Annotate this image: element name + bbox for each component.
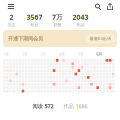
staticText: 作品 bbox=[63, 103, 73, 109]
button[interactable]: 作品 bbox=[63, 103, 87, 110]
button[interactable]: 2 bbox=[0, 13, 23, 27]
staticText: 获赞 bbox=[53, 22, 61, 27]
staticText: 2月 bbox=[22, 51, 28, 57]
staticText: 3月 bbox=[40, 51, 46, 57]
staticText: 572 bbox=[44, 103, 53, 110]
staticText: 1月 bbox=[3, 51, 9, 57]
button[interactable]: 阅读 bbox=[32, 103, 53, 110]
staticText: 5月 bbox=[78, 51, 84, 57]
button[interactable]: 7万 bbox=[46, 13, 69, 27]
staticText: 1686 bbox=[75, 103, 87, 110]
staticText: 7万 bbox=[52, 13, 63, 21]
staticText: 开通下期阅会员 bbox=[8, 35, 43, 42]
staticText: 2043 bbox=[72, 13, 88, 21]
staticText: 3567 bbox=[26, 13, 42, 21]
staticText: 阅读 bbox=[32, 103, 42, 109]
staticText: 2 bbox=[9, 13, 13, 21]
button[interactable]: 开通下期阅会员 bbox=[3, 30, 117, 47]
button[interactable]: Share bbox=[104, 0, 116, 12]
button[interactable]: Search bbox=[92, 0, 104, 12]
staticText: 关注 bbox=[7, 22, 15, 27]
staticText: 粉丝 bbox=[30, 22, 38, 27]
staticText: 6月 bbox=[96, 51, 102, 57]
staticText: 最低0.3元/天 bbox=[89, 36, 111, 41]
button[interactable]: Menu bbox=[4, 0, 18, 12]
staticText: 4月 bbox=[59, 51, 65, 57]
button[interactable]: 3567 bbox=[23, 13, 46, 27]
staticText: 作品 bbox=[76, 22, 84, 27]
button[interactable]: 2043 bbox=[69, 13, 92, 27]
